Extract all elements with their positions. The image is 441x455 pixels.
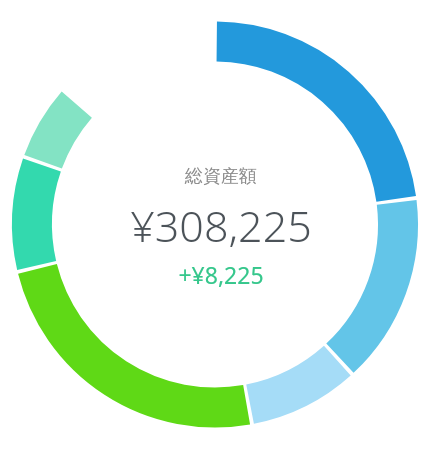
- button[interactable]: 総資産額: [130, 165, 312, 290]
- staticText: ¥308,225: [130, 196, 312, 255]
- button[interactable]: 資産構成ドーナツグラフ: [0, 0, 441, 455]
- staticText: +¥8,225: [178, 259, 264, 290]
- staticText: 総資産額: [185, 165, 257, 188]
